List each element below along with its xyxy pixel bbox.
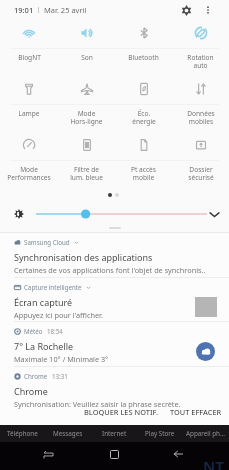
staticText: Internet bbox=[102, 429, 127, 438]
staticText: TOUT EFFACER bbox=[170, 407, 222, 417]
button[interactable]: Expand bbox=[206, 206, 222, 222]
staticText: NT bbox=[203, 456, 224, 470]
staticText: Certaines de vos applications font l'obj… bbox=[14, 265, 206, 275]
button[interactable]: Appareil ph... bbox=[183, 425, 229, 442]
staticText: BLOQUER LES NOTIF. bbox=[84, 407, 158, 417]
staticText: Chrome bbox=[24, 372, 48, 380]
staticText: Météo bbox=[24, 327, 43, 335]
button[interactable]: Messages bbox=[45, 425, 91, 442]
button[interactable]: Samsung Cloud bbox=[0, 233, 229, 278]
staticText: 7° La Rochelle bbox=[14, 340, 74, 352]
button[interactable]: Pt accès mobile bbox=[115, 120, 172, 176]
staticText: Mode Performances bbox=[7, 165, 51, 182]
staticText: Capture intelligente bbox=[24, 283, 82, 291]
button[interactable]: Settings bbox=[178, 2, 194, 18]
staticText: Téléphone bbox=[7, 429, 38, 438]
button[interactable]: Dossier sécurisé bbox=[172, 120, 229, 176]
button[interactable]: Éco. énergie bbox=[115, 64, 172, 120]
staticText: Son bbox=[81, 53, 93, 62]
staticText: Filtre de lum. bleue bbox=[70, 165, 103, 182]
staticText: Lampe bbox=[18, 109, 40, 118]
button[interactable]: Brightness bbox=[34, 203, 209, 225]
staticText: 18:54 bbox=[47, 327, 63, 335]
button[interactable]: Chrome bbox=[0, 367, 229, 412]
staticText: Chrome bbox=[14, 385, 48, 397]
staticText: Écran capturé bbox=[14, 296, 73, 308]
button[interactable]: Back bbox=[163, 440, 193, 468]
button[interactable]: BLOQUER LES NOTIF. bbox=[81, 405, 161, 419]
staticText: BlogNT bbox=[18, 53, 41, 62]
staticText: Bluetooth bbox=[128, 53, 159, 62]
button[interactable]: Capture intelligente bbox=[0, 278, 229, 323]
button[interactable]: Bluetooth bbox=[115, 8, 172, 64]
staticText: Mar. 25 avril bbox=[44, 5, 87, 15]
button[interactable]: Rotation auto bbox=[172, 8, 229, 64]
staticText: 19:01 bbox=[14, 5, 34, 15]
staticText: Rotation auto bbox=[187, 53, 214, 70]
button[interactable]: More options bbox=[200, 2, 216, 18]
staticText: Appuyez ici pour l'afficher. bbox=[14, 310, 103, 320]
button[interactable]: Filtre de lum. bleue bbox=[58, 120, 115, 176]
staticText: Appareil ph... bbox=[186, 429, 226, 438]
button[interactable]: Mode Hors-ligne bbox=[58, 64, 115, 120]
staticText: Synchronisation des applications bbox=[14, 251, 153, 263]
button[interactable]: Internet bbox=[91, 425, 137, 442]
staticText: Mode Hors-ligne bbox=[70, 109, 103, 126]
button[interactable]: Son bbox=[58, 8, 115, 64]
button[interactable]: BlogNT bbox=[0, 8, 58, 64]
button[interactable]: Home bbox=[99, 440, 129, 468]
staticText: Samsung Cloud bbox=[24, 238, 70, 246]
button[interactable]: Lampe bbox=[0, 64, 58, 120]
button[interactable]: Données mobiles bbox=[172, 64, 229, 120]
button[interactable]: Météo bbox=[0, 322, 229, 367]
staticText: Play Store bbox=[145, 429, 175, 438]
staticText: Données mobiles bbox=[187, 109, 215, 126]
button[interactable]: TOUT EFFACER bbox=[167, 405, 225, 419]
staticText: Messages bbox=[53, 429, 83, 438]
staticText: 13:31 bbox=[52, 372, 68, 380]
staticText: Synchronisation: Veuillez saisir la phra… bbox=[14, 399, 181, 409]
staticText: Pt accès mobile bbox=[131, 165, 156, 182]
staticText: Maximale 10° / Minimale 3° bbox=[14, 354, 109, 364]
staticText: Éco. énergie bbox=[132, 109, 156, 126]
button[interactable]: Recents bbox=[33, 440, 63, 468]
button[interactable]: Play Store bbox=[137, 425, 183, 442]
button[interactable]: Téléphone bbox=[0, 425, 45, 442]
button[interactable]: Mode Performances bbox=[0, 120, 58, 176]
staticText: Dossier sécurisé bbox=[188, 165, 214, 182]
